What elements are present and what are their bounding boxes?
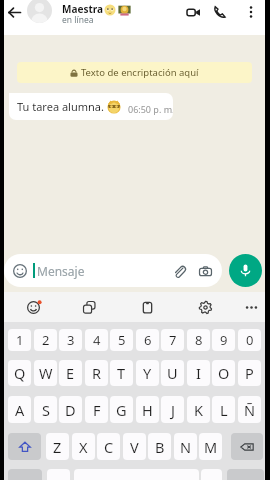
button[interactable]: 1 (8, 329, 31, 351)
staticText: Ñ (244, 400, 256, 420)
button[interactable]: Comma (47, 469, 70, 480)
button[interactable]: 5 (110, 329, 133, 351)
staticText: 0 (246, 331, 254, 349)
button[interactable]: Mensaje (4, 254, 222, 287)
staticText: Maestra (62, 2, 104, 16)
staticText: C (104, 437, 114, 457)
button[interactable]: D (59, 396, 82, 423)
staticText: O (218, 363, 230, 383)
staticText: 9 (220, 331, 228, 349)
staticText: Z (53, 437, 62, 457)
staticText: G (116, 400, 127, 420)
button[interactable]: 9 (212, 329, 235, 351)
button[interactable]: 6 (136, 329, 159, 351)
button[interactable]: Stickers (76, 294, 102, 320)
button[interactable]: 0 (238, 329, 261, 351)
staticText: N (180, 437, 192, 457)
button[interactable]: Clipboard (134, 294, 160, 320)
button[interactable]: Q (8, 360, 31, 386)
button[interactable]: R (85, 360, 108, 386)
button[interactable]: L (212, 396, 235, 423)
staticText: H (142, 400, 153, 420)
staticText: U (167, 363, 178, 383)
button[interactable]: P (238, 360, 261, 386)
button[interactable]: 8 (187, 329, 210, 351)
staticText: L (220, 400, 228, 420)
staticText: R (92, 363, 102, 383)
button[interactable]: Video call (185, 4, 201, 20)
staticText: 4 (93, 331, 101, 349)
button[interactable]: V (123, 433, 146, 460)
button[interactable]: Texto de encriptación aquí (17, 62, 252, 83)
button[interactable]: 4 (85, 329, 108, 351)
staticText: T (117, 363, 126, 383)
button[interactable]: F (85, 396, 108, 423)
button[interactable]: Camera (196, 262, 214, 280)
staticText: M (204, 437, 218, 457)
staticText: V (130, 437, 139, 457)
button[interactable]: Emoji (20, 294, 46, 320)
button[interactable]: Settings (192, 294, 218, 320)
button[interactable]: B (148, 433, 171, 460)
button[interactable]: G (110, 396, 133, 423)
staticText: A (15, 400, 25, 420)
button[interactable]: 2 (34, 329, 57, 351)
button[interactable]: H (136, 396, 159, 423)
staticText: I (196, 363, 201, 383)
staticText: J (171, 400, 175, 420)
button[interactable]: I (187, 360, 210, 386)
button[interactable]: Back (6, 4, 22, 20)
staticText: 8 (195, 331, 203, 349)
button[interactable]: Attach (170, 262, 188, 280)
button[interactable]: O (212, 360, 235, 386)
staticText: 7 (169, 331, 177, 349)
staticText: 5 (118, 331, 126, 349)
staticText: B (155, 437, 165, 457)
button[interactable]: Voice call (212, 4, 228, 20)
button[interactable]: X (72, 433, 95, 460)
button[interactable]: Period (201, 469, 222, 480)
button[interactable]: K (187, 396, 210, 423)
staticText: 3 (67, 331, 75, 349)
button[interactable]: Ñ (238, 396, 261, 423)
button[interactable]: 3 (59, 329, 82, 351)
button[interactable]: J (161, 396, 184, 423)
button[interactable]: 7 (161, 329, 184, 351)
button[interactable]: More (238, 294, 264, 320)
button[interactable]: T (110, 360, 133, 386)
button[interactable]: N (174, 433, 197, 460)
button[interactable]: Backspace (231, 433, 263, 460)
staticText: 1 (16, 331, 24, 349)
button[interactable]: A (8, 396, 31, 423)
staticText: Q (14, 363, 26, 383)
staticText: 6 (144, 331, 152, 349)
staticText: D (65, 400, 76, 420)
staticText: W (39, 363, 53, 383)
button[interactable]: U (161, 360, 184, 386)
button[interactable]: W (34, 360, 57, 386)
staticText: 2 (42, 331, 50, 349)
staticText: Y (143, 363, 152, 383)
staticText: X (79, 437, 88, 457)
button[interactable]: Z (46, 433, 69, 460)
button[interactable]: Tu tarea alumna. (9, 93, 173, 120)
button[interactable]: More options (243, 4, 259, 20)
button[interactable]: C (97, 433, 120, 460)
staticText: P (245, 363, 254, 383)
button[interactable]: Profile photo (27, 0, 52, 23)
button[interactable]: S (34, 396, 57, 423)
staticText: S (42, 400, 50, 420)
staticText: F (93, 400, 101, 420)
button[interactable]: M (199, 433, 222, 460)
staticText: E (66, 363, 75, 383)
button[interactable]: Y (136, 360, 159, 386)
button[interactable]: Voice message (229, 254, 262, 287)
button[interactable]: Shift (8, 433, 41, 460)
button[interactable]: E (59, 360, 82, 386)
staticText: en línea (62, 14, 94, 26)
